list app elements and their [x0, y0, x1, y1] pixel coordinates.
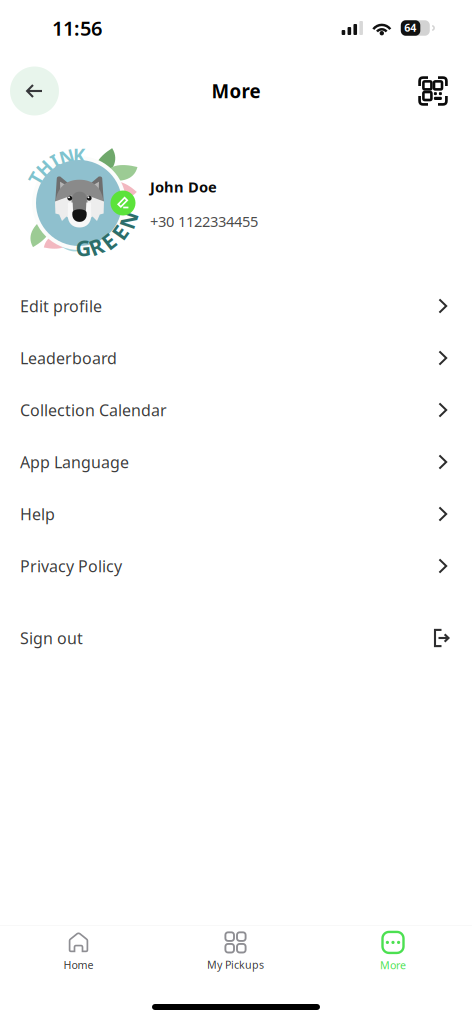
staticText: R — [89, 232, 103, 261]
button[interactable]: More — [314, 926, 472, 978]
staticText: John Doe — [150, 177, 217, 196]
staticText: +30 1122334455 — [150, 211, 258, 231]
staticText: Sign out — [20, 627, 83, 649]
staticText: Home — [63, 958, 93, 972]
staticText: More — [211, 79, 260, 103]
staticText: More — [380, 958, 406, 972]
staticText: 11:56 — [52, 15, 102, 41]
button[interactable]: Home — [0, 926, 157, 978]
staticText: N — [120, 206, 137, 234]
staticText: My Pickups — [207, 957, 264, 972]
button[interactable]: Edit profile — [0, 280, 472, 332]
staticText: Edit profile — [20, 295, 102, 317]
staticText: T — [30, 166, 41, 190]
staticText: Help — [20, 503, 55, 525]
staticText: I — [51, 148, 58, 173]
button[interactable]: Sign out — [0, 612, 472, 664]
button[interactable]: Leaderboard — [0, 332, 472, 384]
staticText: Leaderboard — [20, 347, 117, 369]
button[interactable]: Scan QR code — [411, 69, 455, 113]
button[interactable]: Collection Calendar — [0, 384, 472, 436]
staticText: App Language — [20, 451, 129, 473]
button[interactable]: App Language — [0, 436, 472, 488]
button[interactable]: Back — [10, 66, 59, 115]
staticText: H — [37, 156, 51, 180]
staticText: E — [114, 218, 126, 246]
button[interactable]: Privacy Policy — [0, 540, 472, 592]
staticText: 64 — [404, 20, 416, 35]
staticText: N — [59, 144, 74, 169]
staticText: K — [73, 143, 85, 168]
staticText: G — [75, 234, 90, 262]
staticText: Privacy Policy — [20, 555, 122, 577]
staticText: Collection Calendar — [20, 399, 167, 421]
button[interactable]: Help — [0, 488, 472, 540]
staticText: E — [103, 227, 115, 255]
button[interactable]: My Pickups — [157, 926, 314, 978]
